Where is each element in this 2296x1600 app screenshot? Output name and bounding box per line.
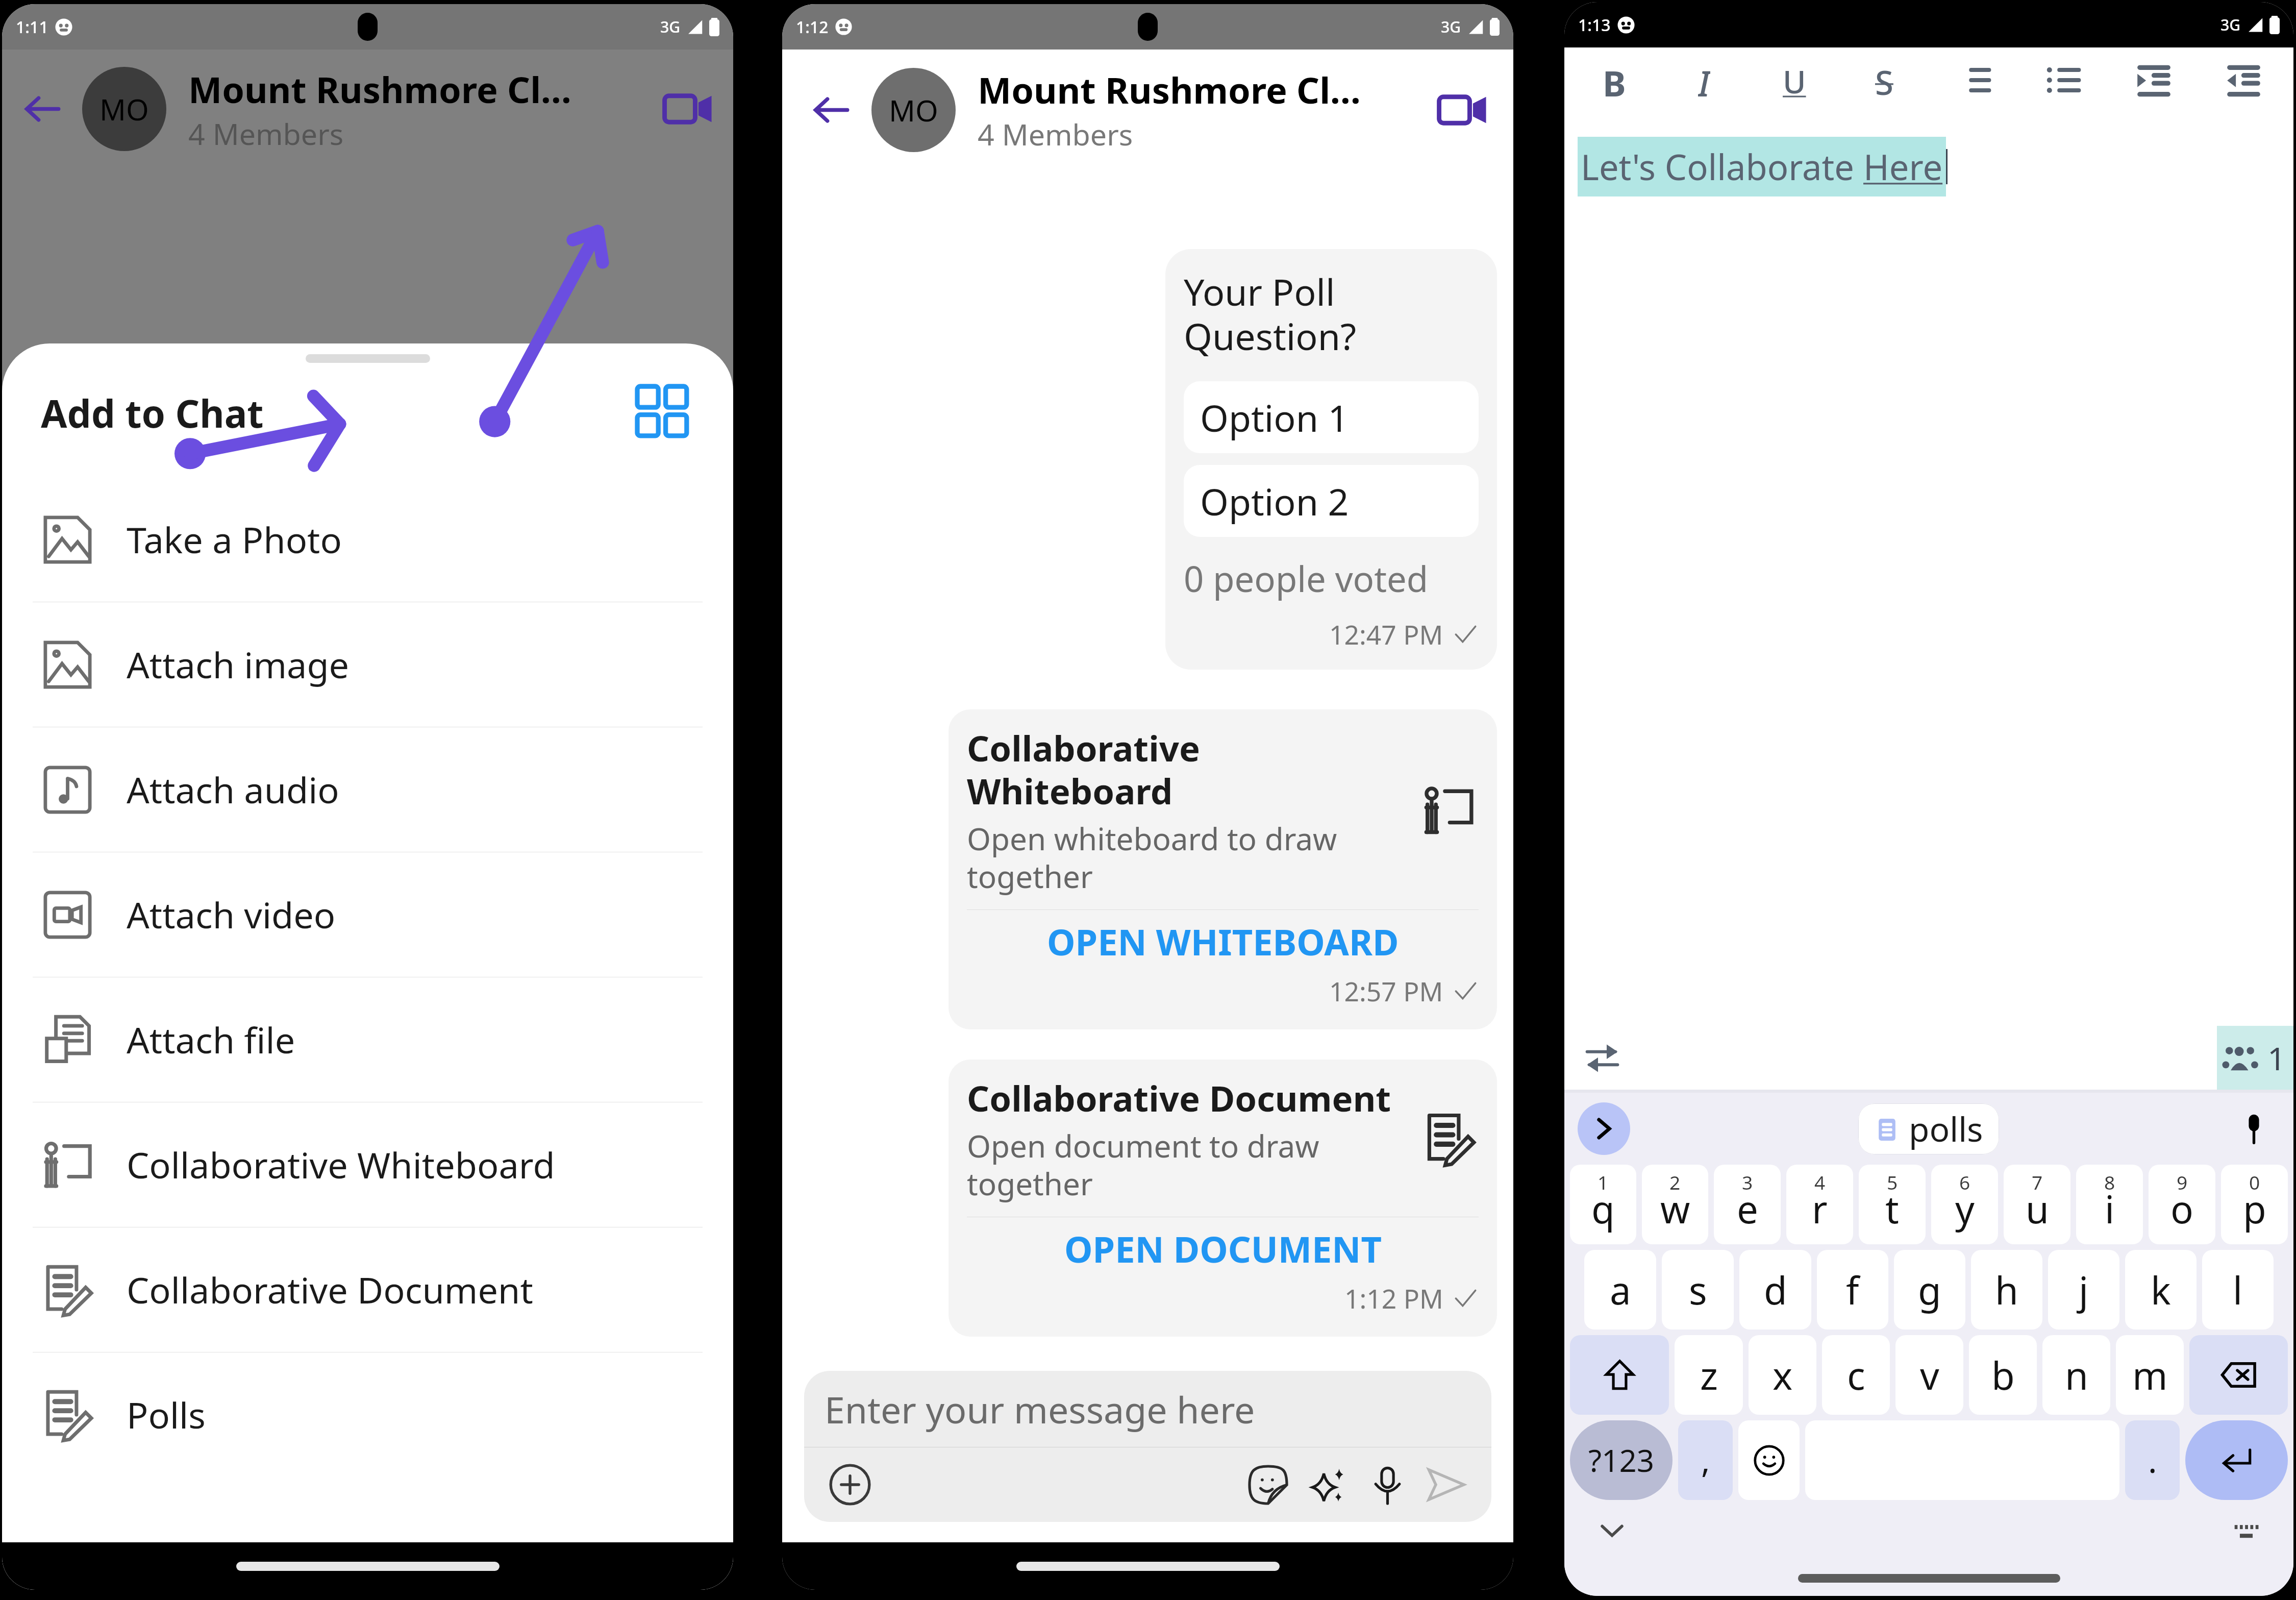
button[interactable]: 9: [2149, 1165, 2215, 1244]
staticText: a: [1610, 1264, 1631, 1316]
button[interactable]: OPEN DOCUMENT: [967, 1217, 1479, 1281]
button[interactable]: Emoji: [1738, 1420, 1800, 1500]
button[interactable]: Polls: [2, 1352, 733, 1477]
button[interactable]: Collaborative Document: [2, 1227, 733, 1352]
button[interactable]: 8: [2076, 1165, 2143, 1244]
button[interactable]: Shift: [1570, 1335, 1669, 1415]
button[interactable]: Attach video: [2, 852, 733, 977]
button[interactable]: Collaborative Document: [949, 1060, 1497, 1337]
button[interactable]: f: [1817, 1250, 1888, 1330]
button[interactable]: d: [1739, 1250, 1811, 1330]
staticText: b: [1991, 1349, 2015, 1401]
button[interactable]: j: [2048, 1250, 2119, 1330]
staticText: 1:12: [796, 16, 829, 38]
staticText: ?123: [1588, 1439, 1655, 1481]
staticText: OPEN WHITEBOARD: [1047, 917, 1399, 966]
staticText: MO: [889, 90, 938, 130]
button[interactable]: Italic: [1667, 49, 1740, 113]
button[interactable]: Collaborative Whiteboard: [2, 1102, 733, 1227]
button[interactable]: Grid view: [632, 381, 694, 444]
button[interactable]: 7: [2004, 1165, 2070, 1244]
staticText: 1:13: [1578, 14, 1611, 36]
button[interactable]: More suggestions: [1578, 1102, 1630, 1155]
staticText: e: [1737, 1183, 1758, 1235]
staticText: n: [2065, 1349, 2088, 1401]
staticText: Your Poll Question?: [1184, 266, 1479, 361]
button[interactable]: Attach audio: [2, 727, 733, 852]
button[interactable]: Switch mode: [1580, 1036, 1624, 1080]
button[interactable]: Enter your message here: [804, 1371, 1491, 1447]
button[interactable]: ?123: [1570, 1420, 1673, 1500]
staticText: Attach image: [127, 640, 350, 689]
staticText: w: [1660, 1183, 1690, 1235]
staticText: r: [1812, 1183, 1828, 1235]
button[interactable]: Bold: [1578, 49, 1651, 113]
button[interactable]: ,: [1678, 1420, 1733, 1500]
button[interactable]: Decrease indent: [2207, 49, 2280, 113]
button[interactable]: Strikethrough: [1848, 49, 1920, 113]
staticText: 2: [1669, 1169, 1681, 1195]
button[interactable]: Collaborative Whiteboard: [949, 709, 1497, 1029]
button[interactable]: Bulleted list: [2027, 49, 2100, 113]
button[interactable]: Increase indent: [2117, 49, 2190, 113]
button[interactable]: v: [1895, 1335, 1963, 1415]
button[interactable]: 1: [1570, 1165, 1636, 1244]
button[interactable]: MO: [871, 68, 956, 152]
button[interactable]: 3: [1714, 1165, 1781, 1244]
button[interactable]: Change keyboard: [2224, 1509, 2268, 1553]
button[interactable]: AI assist: [1302, 1459, 1353, 1510]
button[interactable]: Attach image: [2, 602, 733, 727]
staticText: v: [1920, 1349, 1939, 1401]
button[interactable]: Let's Collaborate: [1581, 143, 1943, 190]
button[interactable]: Record voice: [1362, 1459, 1413, 1510]
button[interactable]: Back: [801, 79, 863, 141]
staticText: B: [1603, 59, 1626, 103]
button[interactable]: g: [1894, 1250, 1965, 1330]
button[interactable]: 4: [1786, 1165, 1853, 1244]
button[interactable]: Numbered list: [1937, 49, 2010, 113]
button[interactable]: Option 2: [1184, 465, 1479, 537]
button[interactable]: Sticker: [1242, 1459, 1293, 1510]
staticText: Mount Rushmore Cl…: [188, 65, 572, 114]
staticText: ,: [1701, 1437, 1710, 1483]
staticText: 1: [2267, 1036, 2286, 1080]
button[interactable]: 6: [1931, 1165, 1998, 1244]
staticText: Add to Chat: [41, 387, 264, 438]
button[interactable]: polls: [1858, 1103, 1999, 1154]
button[interactable]: 2: [1642, 1165, 1708, 1244]
button[interactable]: OPEN WHITEBOARD: [967, 910, 1479, 973]
staticText: x: [1773, 1349, 1793, 1401]
button[interactable]: h: [1971, 1250, 2042, 1330]
button[interactable]: Hide keyboard: [1590, 1509, 1634, 1553]
button[interactable]: Add attachment: [825, 1459, 876, 1510]
button[interactable]: k: [2125, 1250, 2197, 1330]
button[interactable]: Option 1: [1184, 381, 1479, 453]
button[interactable]: z: [1675, 1335, 1743, 1415]
button[interactable]: a: [1584, 1250, 1656, 1330]
button[interactable]: n: [2042, 1335, 2110, 1415]
staticText: k: [2151, 1264, 2171, 1316]
button[interactable]: 5: [1859, 1165, 1926, 1244]
staticText: o: [2170, 1183, 2193, 1235]
button[interactable]: Video call: [1429, 77, 1495, 143]
button[interactable]: x: [1749, 1335, 1816, 1415]
button[interactable]: Send: [1420, 1459, 1471, 1510]
button[interactable]: 1: [2217, 1026, 2293, 1090]
button[interactable]: 0: [2221, 1165, 2288, 1244]
button[interactable]: Your Poll Question?: [1165, 249, 1497, 670]
button[interactable]: Backspace: [2189, 1335, 2288, 1415]
staticText: i: [2105, 1183, 2115, 1235]
button[interactable]: Take a Photo: [2, 477, 733, 602]
button[interactable]: b: [1969, 1335, 2037, 1415]
button[interactable]: Enter: [2185, 1420, 2288, 1500]
button[interactable]: Attach file: [2, 977, 733, 1102]
button[interactable]: Voice input: [2228, 1102, 2280, 1155]
button[interactable]: s: [1662, 1250, 1734, 1330]
button[interactable]: l: [2202, 1250, 2274, 1330]
button[interactable]: Underline: [1758, 49, 1831, 113]
button[interactable]: c: [1822, 1335, 1890, 1415]
button[interactable]: .: [2125, 1420, 2180, 1500]
button[interactable]: m: [2116, 1335, 2184, 1415]
staticText: g: [1918, 1264, 1941, 1316]
